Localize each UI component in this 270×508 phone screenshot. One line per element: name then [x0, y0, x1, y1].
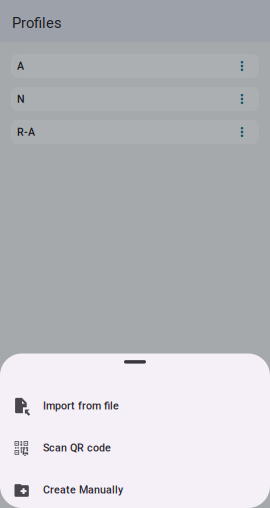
staticText: A [17, 60, 24, 72]
button[interactable]: R-A [11, 120, 259, 144]
staticText: R-A [17, 126, 35, 138]
button[interactable]: Create Manually [0, 469, 270, 508]
staticText: Create Manually [43, 484, 123, 496]
button[interactable]: Scan QR code [0, 427, 270, 469]
button[interactable]: N [11, 87, 259, 111]
staticText: Scan QR code [43, 442, 111, 454]
button[interactable]: A [11, 54, 259, 78]
button[interactable]: Import from file [0, 385, 270, 427]
staticText: Profiles [12, 14, 62, 32]
staticText: N [17, 93, 25, 105]
staticText: Import from file [43, 400, 119, 412]
